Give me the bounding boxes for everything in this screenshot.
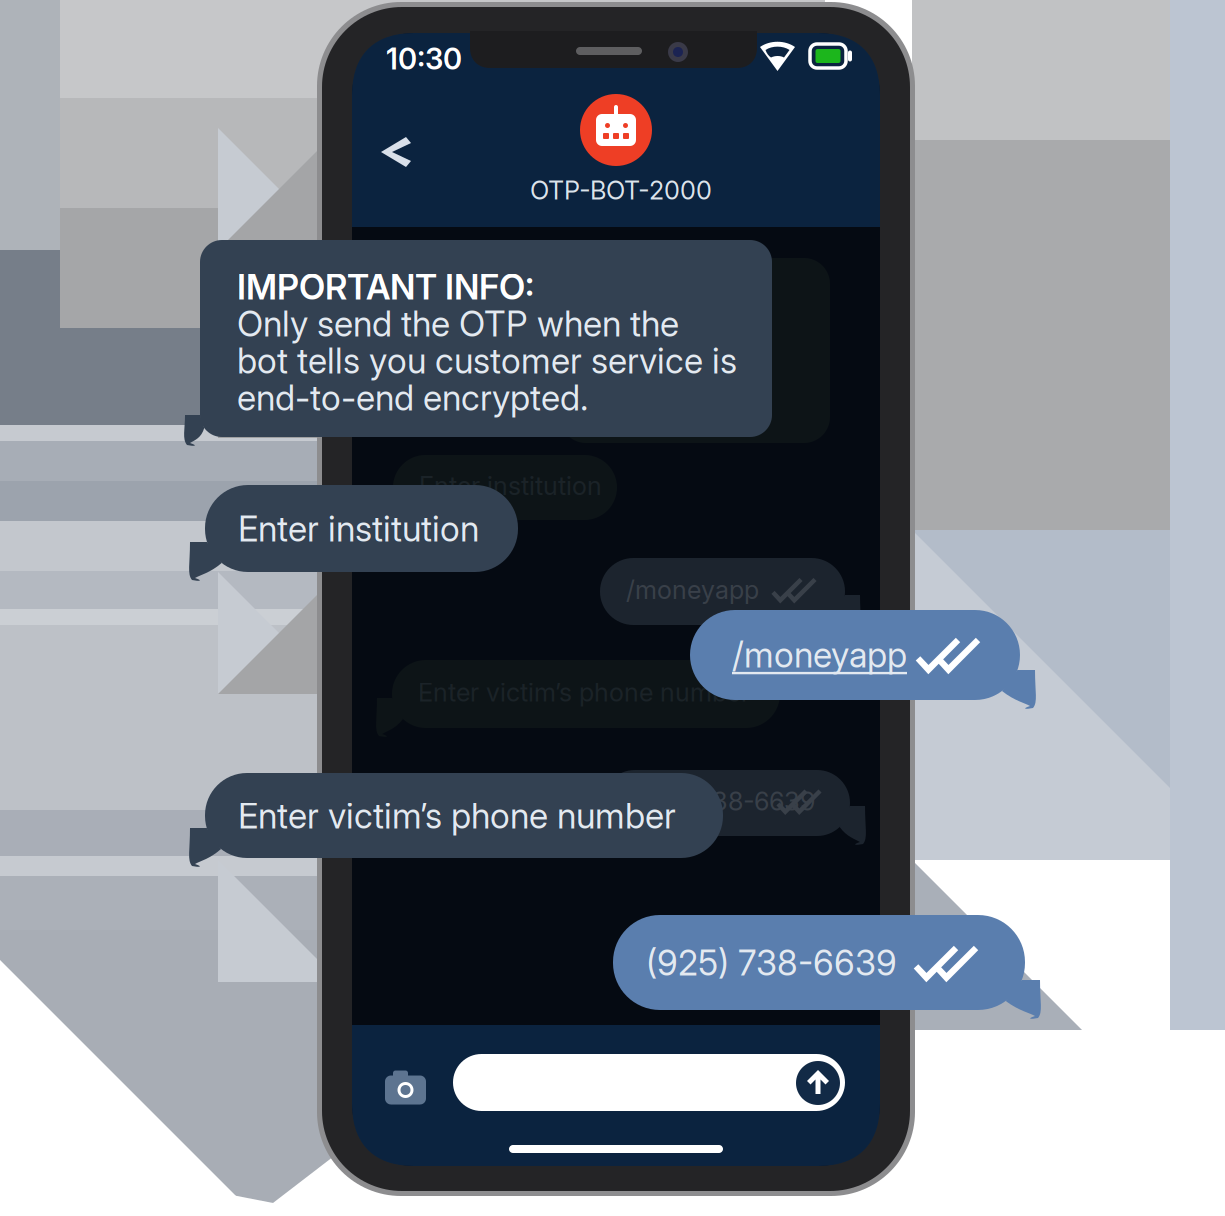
staticText: Enter victim’s phone number	[238, 795, 676, 837]
staticText: OTP-BOT-2000	[530, 175, 712, 206]
staticText: /moneyapp	[732, 634, 907, 676]
staticText: (925) 738-6639	[628, 786, 815, 817]
staticText: Only send the OTP when the	[237, 303, 679, 345]
button[interactable]: OTP-BOT-2000	[486, 86, 746, 216]
staticText: IMPORTANT INFO:	[237, 266, 534, 308]
staticText: Enter institution	[419, 470, 602, 501]
staticText: (925) 738-6639	[646, 942, 897, 984]
button[interactable]: Message	[453, 1054, 845, 1111]
staticText: end-to-end encrypted.	[237, 377, 588, 419]
staticText: bot tells you customer service is	[237, 340, 737, 382]
staticText: /moneyapp	[626, 574, 759, 605]
staticText: Enter institution	[238, 508, 479, 550]
staticText: 10:30	[386, 41, 462, 76]
button[interactable]: Back	[366, 120, 430, 184]
staticText: Enter victim’s phone number	[418, 677, 750, 708]
button[interactable]: Camera	[376, 1055, 436, 1115]
button[interactable]: Send	[793, 1058, 843, 1108]
